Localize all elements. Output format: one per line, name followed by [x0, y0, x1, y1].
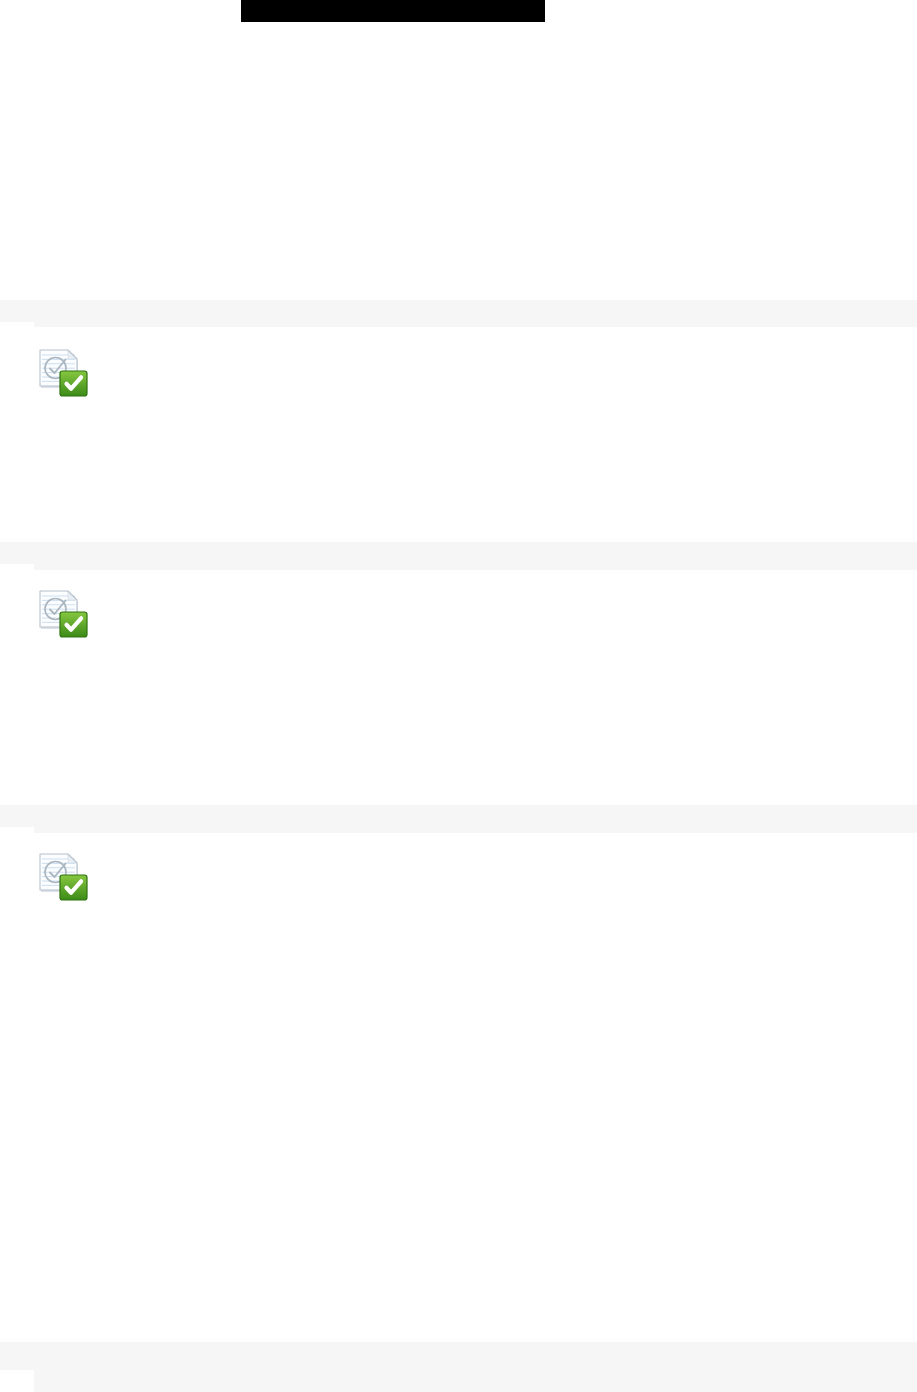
button[interactable]: Completed document: [38, 851, 90, 903]
button[interactable]: Completed document: [38, 347, 90, 399]
button[interactable]: Completed document: [38, 588, 90, 640]
